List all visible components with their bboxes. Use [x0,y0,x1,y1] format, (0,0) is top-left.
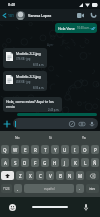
button[interactable]: J [61,158,69,167]
button[interactable]: K [71,158,79,167]
staticText: español [44,187,55,191]
button[interactable] [17,113,97,116]
staticText: N [68,173,72,179]
staticText: Hola Vane [58,26,75,31]
button[interactable]: X [26,171,34,180]
staticText: Ñ [93,160,97,166]
staticText: K [74,160,77,166]
staticText: No [15,135,20,140]
button[interactable]: Backspace [86,171,99,180]
staticText: Hola, como estas? Aqui te los envio [6,99,54,109]
button[interactable]: Attach file [15,118,95,129]
button[interactable]: Back [2,9,14,21]
button[interactable]: Emoji [8,203,17,212]
button[interactable]: ?123 [1,184,12,193]
button[interactable]: E [21,145,29,154]
staticText: V [49,173,52,179]
button[interactable]: O [81,145,89,154]
staticText: Ya [82,135,86,140]
button[interactable]: , [14,184,22,193]
button[interactable]: Z [16,171,24,180]
staticText: Vanesa Lopez [28,13,52,18]
button[interactable]: R [31,145,39,154]
staticText: Si [49,135,52,140]
button[interactable]: L [81,158,89,167]
other: Attach file [69,121,75,127]
button[interactable]: No [0,131,34,143]
staticText: F [34,160,37,166]
button[interactable]: S [11,158,19,167]
button[interactable]: Hola, como estas? Aqui te los envio [6,99,60,112]
button[interactable]: Call [87,9,100,21]
staticText: P [94,147,97,153]
button[interactable]: I [71,145,79,154]
staticText: A [4,160,7,166]
button[interactable]: F [31,158,39,167]
other: Camera [79,121,85,127]
staticText: 8:05 a.m. [33,63,45,67]
button[interactable]: Modelo-3.3.jpg [3,71,47,91]
staticText: , [17,186,19,191]
button[interactable]: A [1,158,9,167]
staticText: 376 KB · jpg [16,57,31,61]
button[interactable]: H [51,158,59,167]
button[interactable]: B [56,171,64,180]
staticText: Ayer [47,43,54,47]
button[interactable]: M [76,171,84,180]
button[interactable]: Profile photo [16,11,25,20]
staticText: ?123 [3,187,10,191]
staticText: T [44,147,47,153]
staticText: intro [89,187,96,191]
staticText: E [24,147,27,153]
button[interactable]: intro [86,184,99,193]
button[interactable]: Ya [67,131,100,143]
button[interactable]: Y [51,145,59,154]
staticText: 10:30 a.m. [77,26,90,30]
staticText: 458 KB · jpg [16,80,31,84]
other: Voice message [89,121,95,127]
staticText: O [83,147,87,153]
button[interactable]: W [11,145,19,154]
staticText: Modelo-3.2.jpg [16,51,41,56]
staticText: W [13,147,18,153]
button[interactable]: Add attachment [0,116,13,131]
staticText: M [78,173,83,179]
staticText: 101 [8,13,14,18]
staticText: I [74,147,76,153]
staticText: C [39,173,42,179]
staticText: Modelo-3.3.jpg [16,74,41,79]
button[interactable]: D [21,158,29,167]
button[interactable]: U [61,145,69,154]
button[interactable]: T [41,145,49,154]
button[interactable]: Hola Vane [58,23,95,33]
button[interactable]: C [36,171,44,180]
button[interactable]: Shift [1,171,14,180]
button[interactable]: Si [34,131,67,143]
staticText: 8:06 a.m. [33,86,45,90]
button[interactable]: Q [1,145,9,154]
staticText: S [14,160,17,166]
button[interactable]: . [76,184,84,193]
staticText: R [34,147,37,153]
staticText: D [23,160,27,166]
button[interactable]: N [66,171,74,180]
staticText: X [29,173,32,179]
staticText: . [79,186,81,191]
staticText: Q [3,147,7,153]
staticText: 2:45 p.m. [48,108,60,112]
staticText: G [43,160,47,166]
button[interactable]: Video call [74,9,87,21]
button[interactable]: P [91,145,99,154]
button[interactable]: Microphone [81,203,90,212]
button[interactable]: Modelo-3.2.jpg [3,48,47,68]
staticText: L [84,160,87,166]
button[interactable]: español [24,184,74,193]
button[interactable]: V [46,171,54,180]
button[interactable]: Ñ [91,158,99,167]
staticText: Y [54,147,57,153]
staticText: H [53,160,57,166]
staticText: B [59,173,62,179]
staticText: 8:48 [8,2,16,7]
staticText: U [63,147,67,153]
button[interactable]: G [41,158,49,167]
